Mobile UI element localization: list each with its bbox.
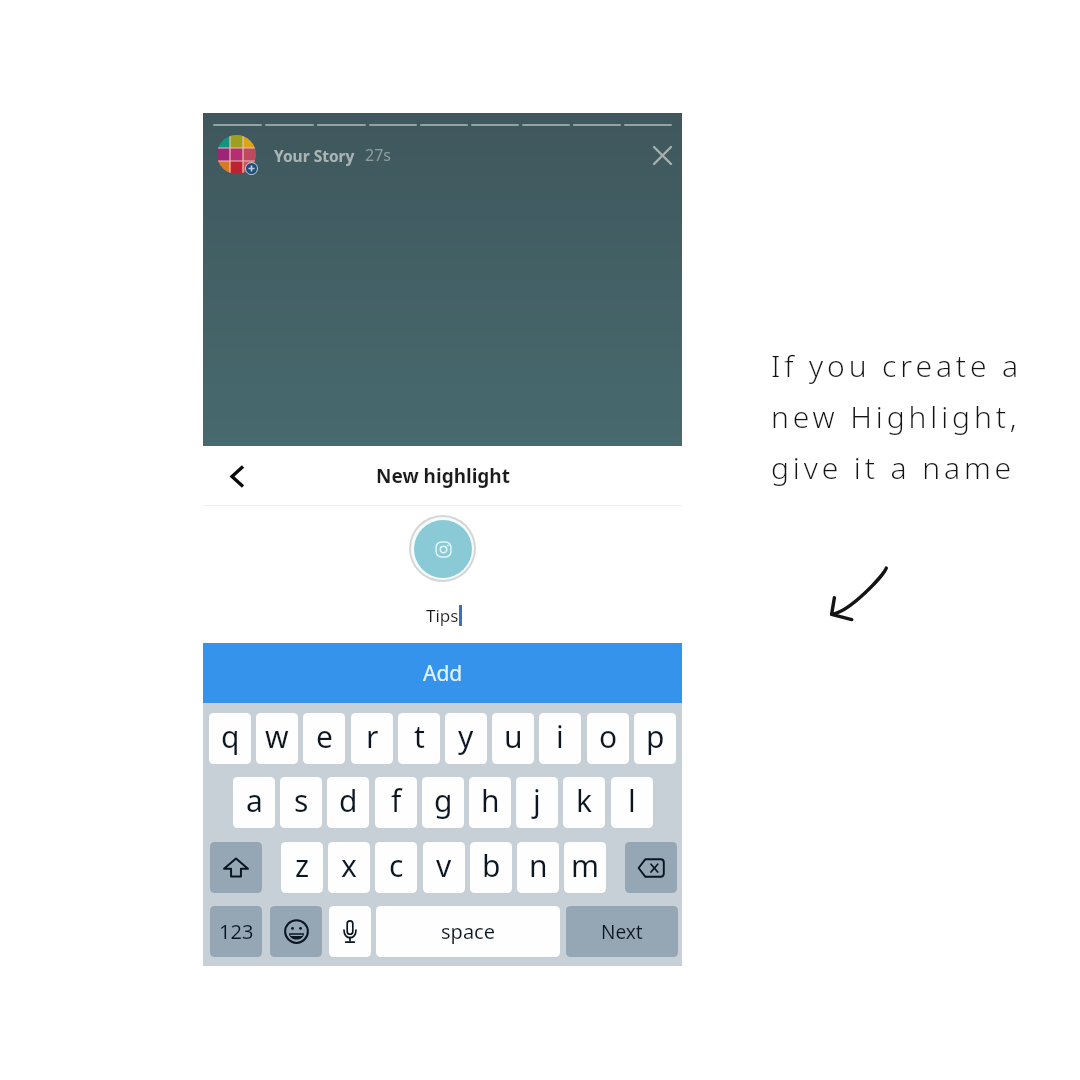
button[interactable]: Shift <box>210 842 262 893</box>
staticText: k <box>576 780 593 821</box>
staticText: r <box>366 716 379 757</box>
staticText: u <box>504 716 523 757</box>
button[interactable]: Back <box>215 454 259 498</box>
staticText: y <box>458 716 474 757</box>
button[interactable]: e <box>303 713 345 764</box>
staticText: l <box>628 780 636 821</box>
staticText: j <box>533 780 541 821</box>
staticText: q <box>221 716 240 757</box>
button[interactable]: d <box>327 777 369 828</box>
button[interactable]: c <box>375 842 417 893</box>
staticText: If you create a new Highlight, give it a… <box>771 345 1023 487</box>
staticText: s <box>294 780 309 821</box>
button[interactable]: o <box>587 713 629 764</box>
button[interactable]: y <box>445 713 487 764</box>
button[interactable]: v <box>423 842 465 893</box>
staticText: a <box>246 780 263 821</box>
staticText: 27s <box>365 144 391 166</box>
button[interactable]: h <box>469 777 511 828</box>
button[interactable]: u <box>492 713 534 764</box>
staticText: f <box>391 780 402 821</box>
button[interactable]: space <box>376 906 560 957</box>
staticText: c <box>389 845 404 886</box>
button[interactable]: j <box>516 777 558 828</box>
staticText: Your Story <box>274 145 355 166</box>
staticText: i <box>556 716 564 757</box>
button[interactable]: Voice input <box>329 906 371 957</box>
button[interactable]: Emoji <box>270 906 322 957</box>
button[interactable]: x <box>328 842 370 893</box>
staticText: d <box>339 780 358 821</box>
button[interactable]: t <box>398 713 440 764</box>
staticText: New highlight <box>376 463 510 489</box>
button[interactable]: q <box>209 713 251 764</box>
staticText: Add <box>423 659 463 688</box>
button[interactable]: z <box>281 842 323 893</box>
staticText: e <box>316 716 333 757</box>
staticText: x <box>341 845 357 886</box>
button[interactable]: k <box>563 777 605 828</box>
button[interactable]: 123 <box>210 906 262 957</box>
button[interactable]: Add <box>203 643 682 703</box>
staticText: m <box>571 845 600 886</box>
staticText: p <box>646 716 665 757</box>
button[interactable]: i <box>539 713 581 764</box>
button[interactable]: m <box>564 842 606 893</box>
staticText: 123 <box>219 918 254 945</box>
button[interactable]: r <box>351 713 393 764</box>
staticText: t <box>414 716 425 757</box>
button[interactable]: g <box>422 777 464 828</box>
staticText: w <box>265 716 289 757</box>
staticText: z <box>295 845 310 886</box>
button[interactable]: n <box>517 842 559 893</box>
staticText: Next <box>601 919 643 945</box>
staticText: n <box>529 845 548 886</box>
button[interactable]: f <box>375 777 417 828</box>
button[interactable]: s <box>280 777 322 828</box>
staticText: g <box>434 780 453 821</box>
staticText: space <box>441 918 495 945</box>
button[interactable]: a <box>233 777 275 828</box>
button[interactable]: w <box>256 713 298 764</box>
staticText: o <box>599 716 618 757</box>
staticText: Tips <box>426 604 459 627</box>
staticText: v <box>436 845 452 886</box>
button[interactable]: l <box>611 777 653 828</box>
button[interactable]: Backspace <box>625 842 677 893</box>
button[interactable]: p <box>634 713 676 764</box>
button[interactable]: b <box>470 842 512 893</box>
staticText: b <box>482 845 501 886</box>
staticText: h <box>481 780 500 821</box>
button[interactable]: Close <box>644 137 680 173</box>
button[interactable]: Next <box>566 906 678 957</box>
